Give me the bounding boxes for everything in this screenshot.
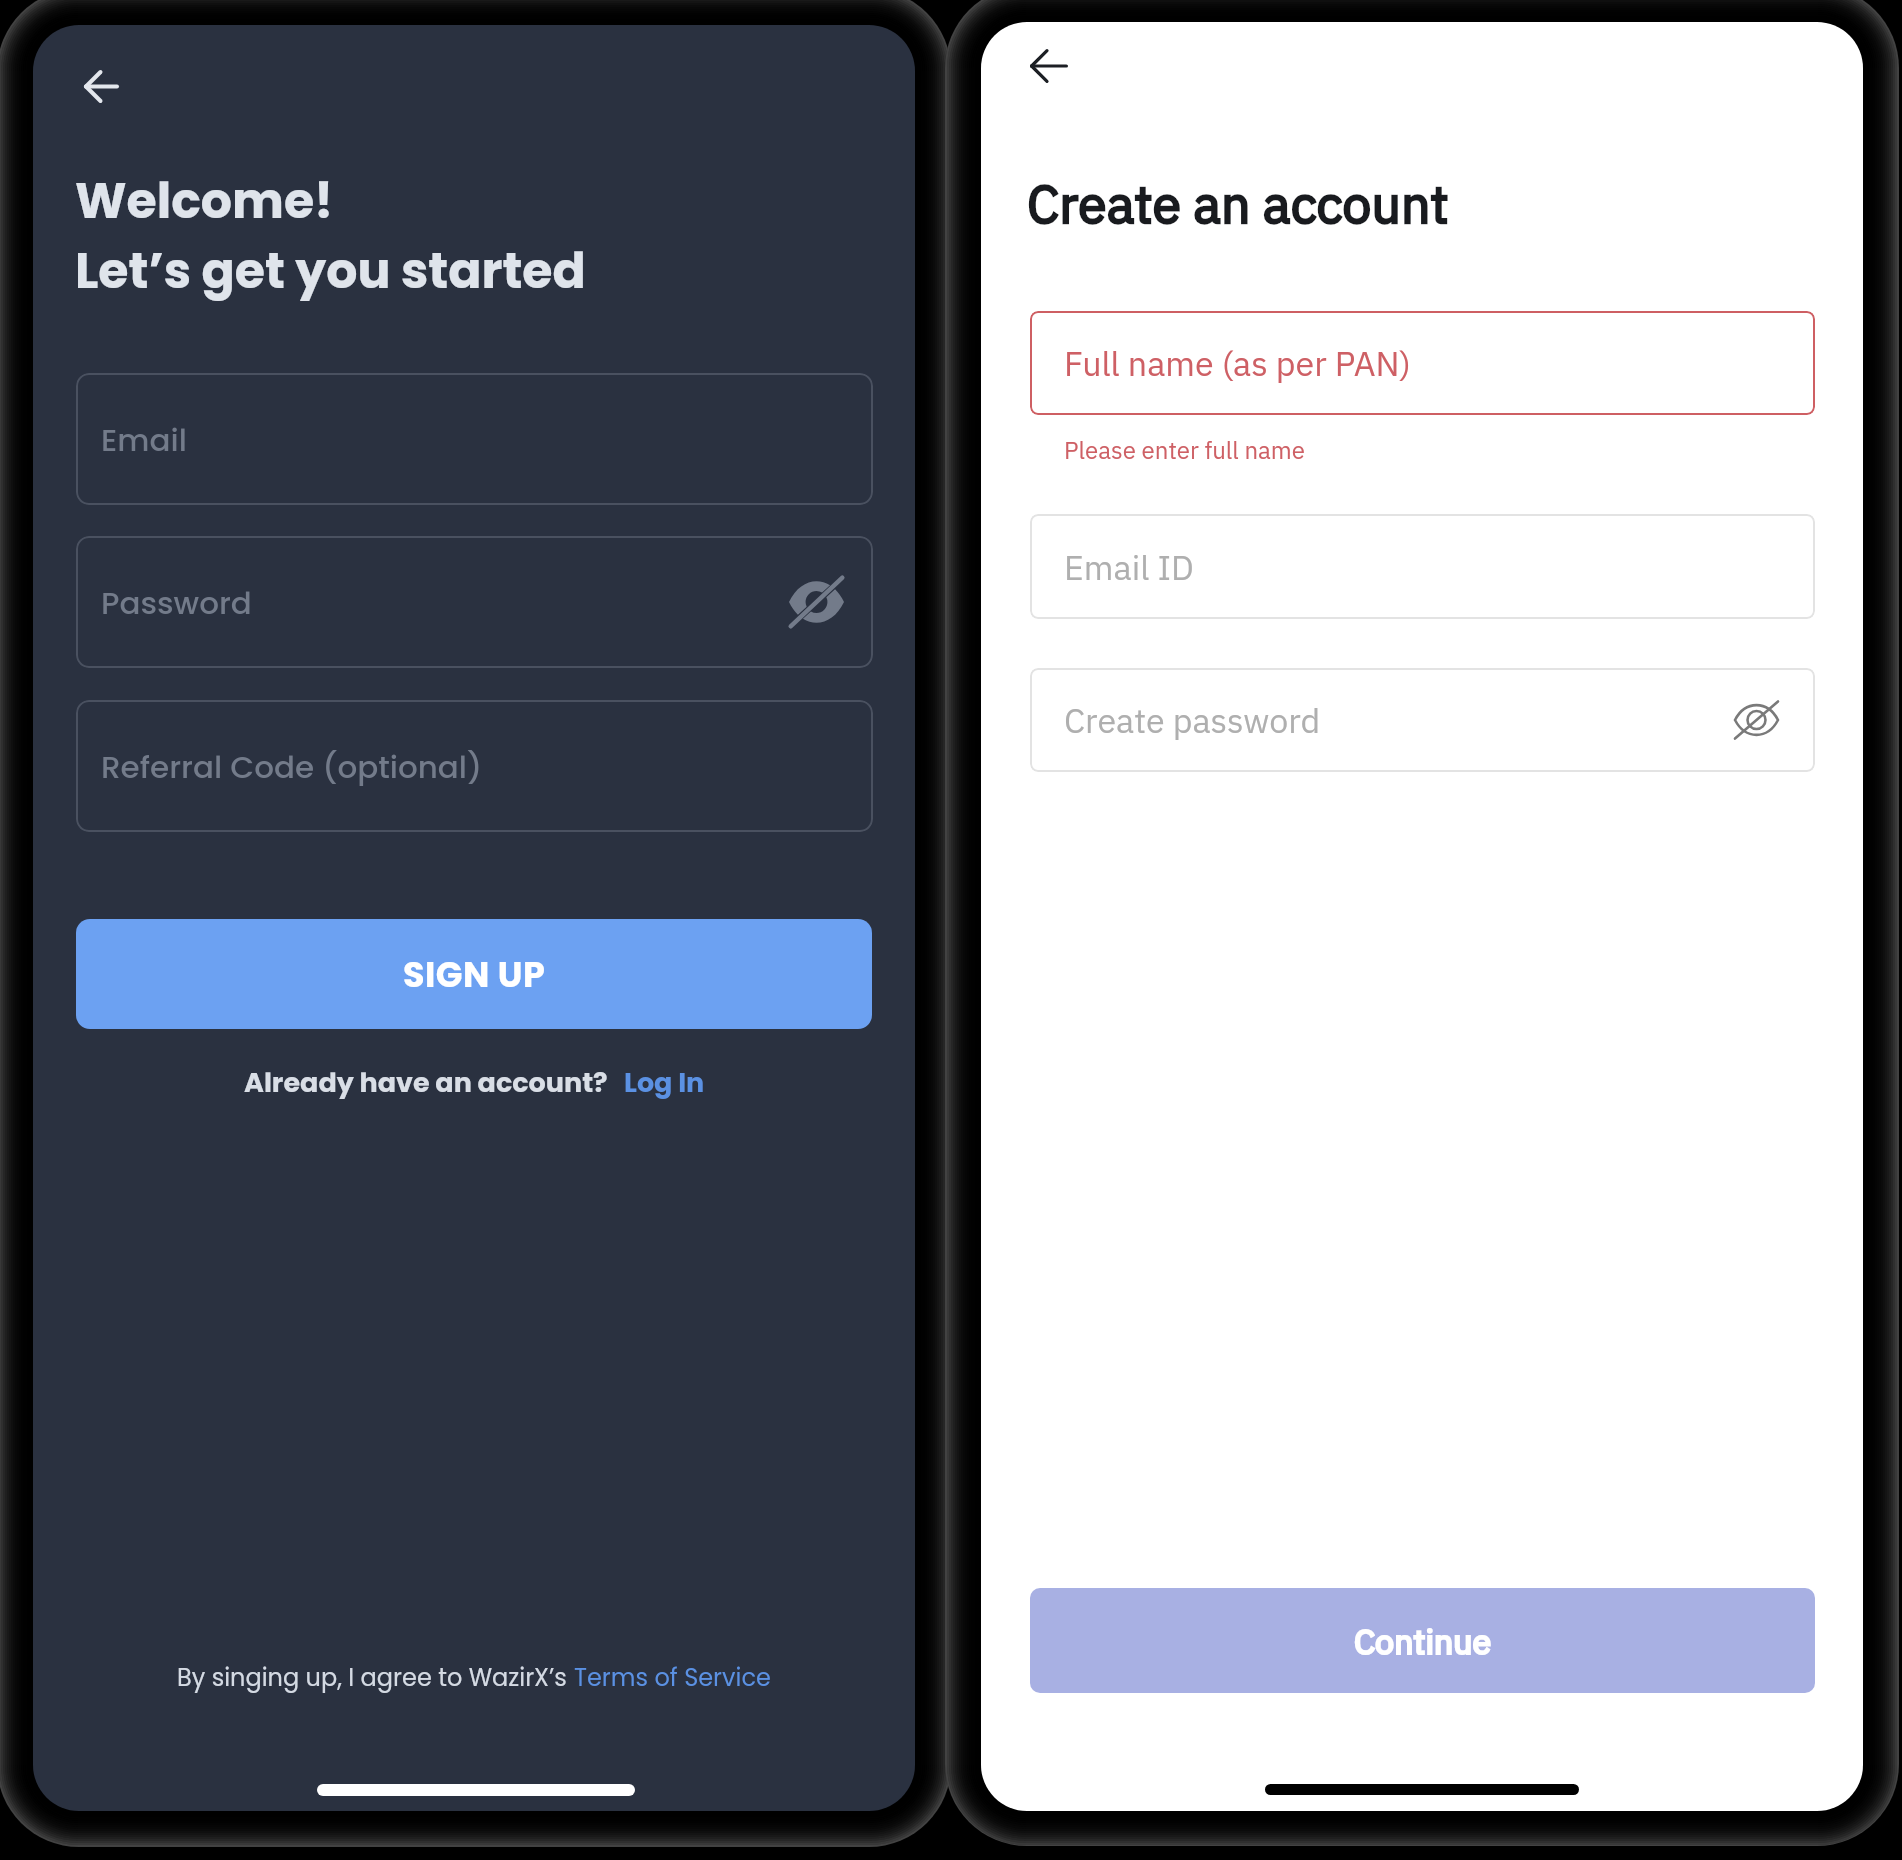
button[interactable]: SIGN UP [76,919,872,1029]
button[interactable]: Full name (as per PAN) [1030,311,1815,415]
staticText: Log In [624,1064,705,1102]
staticText: Continue [1354,1619,1492,1663]
staticText: Password [101,581,252,624]
staticText: Create an account [1027,170,1449,238]
button[interactable]: Email ID [1030,514,1815,619]
staticText: Create password [1064,698,1321,742]
button[interactable]: Back [68,53,134,119]
staticText: Let’s get you started [75,237,586,306]
staticText: Terms of Service [574,1661,771,1695]
staticText: Email [101,418,187,461]
button[interactable]: Referral Code (optional) [76,700,873,832]
staticText: SIGN UP [403,950,546,999]
button[interactable]: Password [76,536,873,668]
staticText: Already have an account? [244,1064,608,1102]
button[interactable]: Create password [1030,668,1815,772]
staticText: Welcome! [75,167,334,236]
button[interactable]: Email [76,373,873,505]
staticText: Create an account [1027,170,1449,238]
button[interactable]: Log In [624,1064,705,1102]
button[interactable]: Continue [1030,1588,1815,1693]
button[interactable]: Back [1015,32,1083,100]
staticText: Email ID [1064,545,1194,589]
staticText: Referral Code (optional) [101,745,483,788]
button[interactable]: Terms of Service [574,1661,771,1695]
staticText: By singing up, I agree to WazirX’s [177,1661,574,1695]
button[interactable]: Show password [783,569,849,635]
staticText: Please enter full name [1064,434,1305,465]
staticText: Continue [1354,1619,1492,1663]
button[interactable]: Show password [1727,691,1785,749]
staticText: Full name (as per PAN) [1064,341,1411,385]
